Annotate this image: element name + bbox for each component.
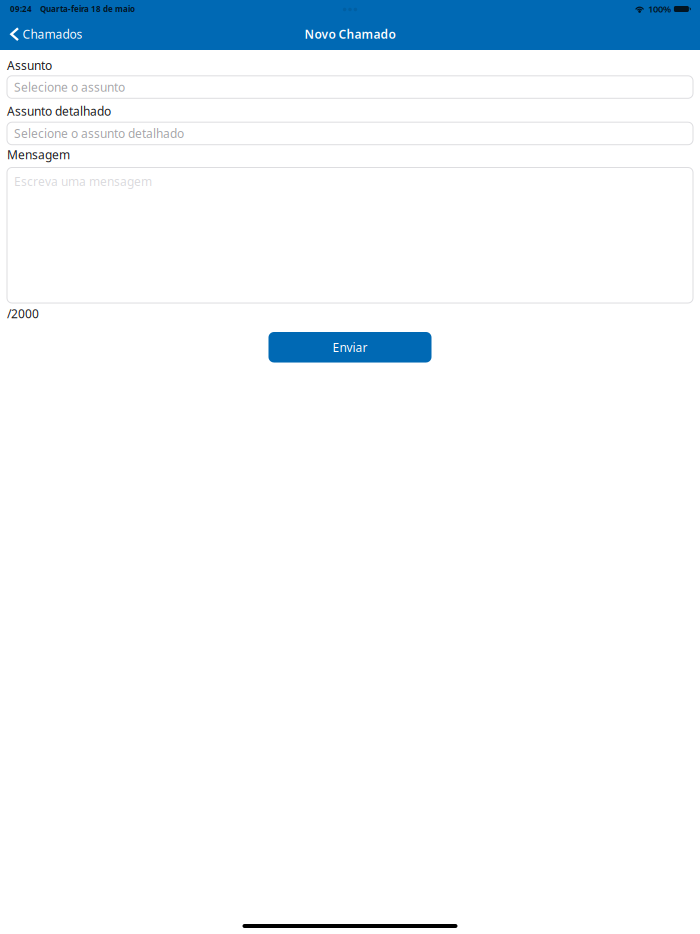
staticText: 100%	[648, 3, 671, 15]
staticText: Assunto	[7, 57, 52, 73]
staticText: Escreva uma mensagem	[14, 173, 152, 189]
button[interactable]: Enviar	[268, 332, 431, 362]
staticText: Selecione o assunto detalhado	[14, 125, 184, 141]
staticText: 09:24	[10, 4, 32, 14]
staticText: Mensagem	[7, 147, 70, 163]
staticText: Novo Chamado	[304, 26, 395, 42]
staticText: /2000	[7, 306, 39, 322]
button[interactable]: Selecione o assunto detalhado	[7, 122, 693, 145]
staticText: Quarta-feira 18 de maio	[40, 4, 135, 14]
staticText: Assunto detalhado	[7, 103, 111, 119]
staticText: Selecione o assunto	[14, 79, 125, 95]
button[interactable]: Selecione o assunto	[7, 76, 693, 98]
button[interactable]: Voltar para Chamados	[0, 18, 92, 50]
staticText: Enviar	[332, 339, 367, 355]
staticText: Chamados	[22, 26, 82, 42]
